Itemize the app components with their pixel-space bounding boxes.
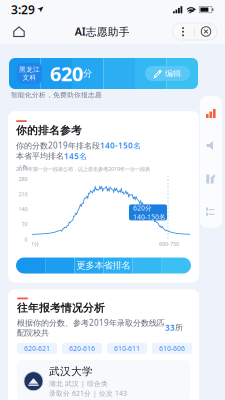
staticText: 610-606 (159, 344, 185, 353)
button[interactable]: More (172, 23, 194, 40)
staticText: 0 (24, 236, 27, 243)
staticText: 编辑 (165, 69, 181, 78)
button[interactable]: Close (195, 23, 217, 40)
staticText: 70 (21, 221, 27, 228)
staticText: 620 (50, 60, 83, 87)
staticText: 根据你的分数、参考2019年录取分数线匹配院校共 (17, 317, 165, 338)
staticText: 145名 (64, 151, 87, 161)
staticText: 620-616 (69, 344, 95, 353)
button[interactable]: Compare (200, 162, 222, 195)
staticText: 人数 (17, 164, 27, 170)
button[interactable]: Report (200, 129, 222, 162)
button[interactable]: 武汉大学 (17, 360, 190, 400)
staticText: 往年报考情况分析 (17, 301, 105, 314)
staticText: 690-750 (159, 240, 179, 247)
staticText: 3:29 (11, 1, 35, 17)
staticText: 分 (83, 68, 92, 79)
staticText: 文科 (22, 73, 36, 82)
button[interactable]: Home (6, 19, 32, 43)
staticText: 武汉大学 (49, 365, 93, 378)
staticText: 湖北 武汉 | 综合类 (49, 379, 108, 388)
staticText: 本省平均排名 (16, 151, 64, 161)
button[interactable]: Ranking (200, 96, 222, 129)
staticText: 你的排名参考 (16, 124, 82, 137)
staticText: 280 (18, 175, 27, 183)
staticText: 黑龙江 (19, 65, 40, 73)
button[interactable]: 610-606 (152, 343, 192, 354)
button[interactable]: 620-616 (62, 343, 102, 354)
button[interactable]: 610-611 (107, 343, 147, 354)
staticText: 2019年第一分一段表公布，以上排名参考2019年一分一段表 (16, 165, 150, 172)
staticText: 610-611 (114, 344, 140, 353)
staticText: 620-621 (24, 344, 50, 353)
staticText: 210 (18, 191, 27, 198)
staticText: 33 (165, 322, 175, 333)
button[interactable]: List (200, 195, 222, 228)
button[interactable]: 更多本省排名 (16, 257, 191, 273)
staticText: AI志愿助手 (75, 24, 130, 39)
staticText: 140 (18, 206, 27, 213)
staticText: 更多本省排名 (76, 260, 130, 271)
staticText: 所 (175, 323, 183, 332)
staticText: 140-150名 (100, 140, 141, 151)
button[interactable]: 620-621 (17, 343, 57, 354)
staticText: 1分 (31, 240, 39, 247)
staticText: 智能化分析，免费助你报志愿 (11, 91, 102, 99)
staticText: 录取分 621分 | 位次 143 (49, 389, 127, 398)
staticText: 140-150名 (133, 212, 166, 221)
button[interactable]: 编辑 (145, 66, 190, 81)
staticText: 620分 (133, 204, 152, 212)
staticText: 你的分数2019年排名段 (16, 140, 100, 151)
